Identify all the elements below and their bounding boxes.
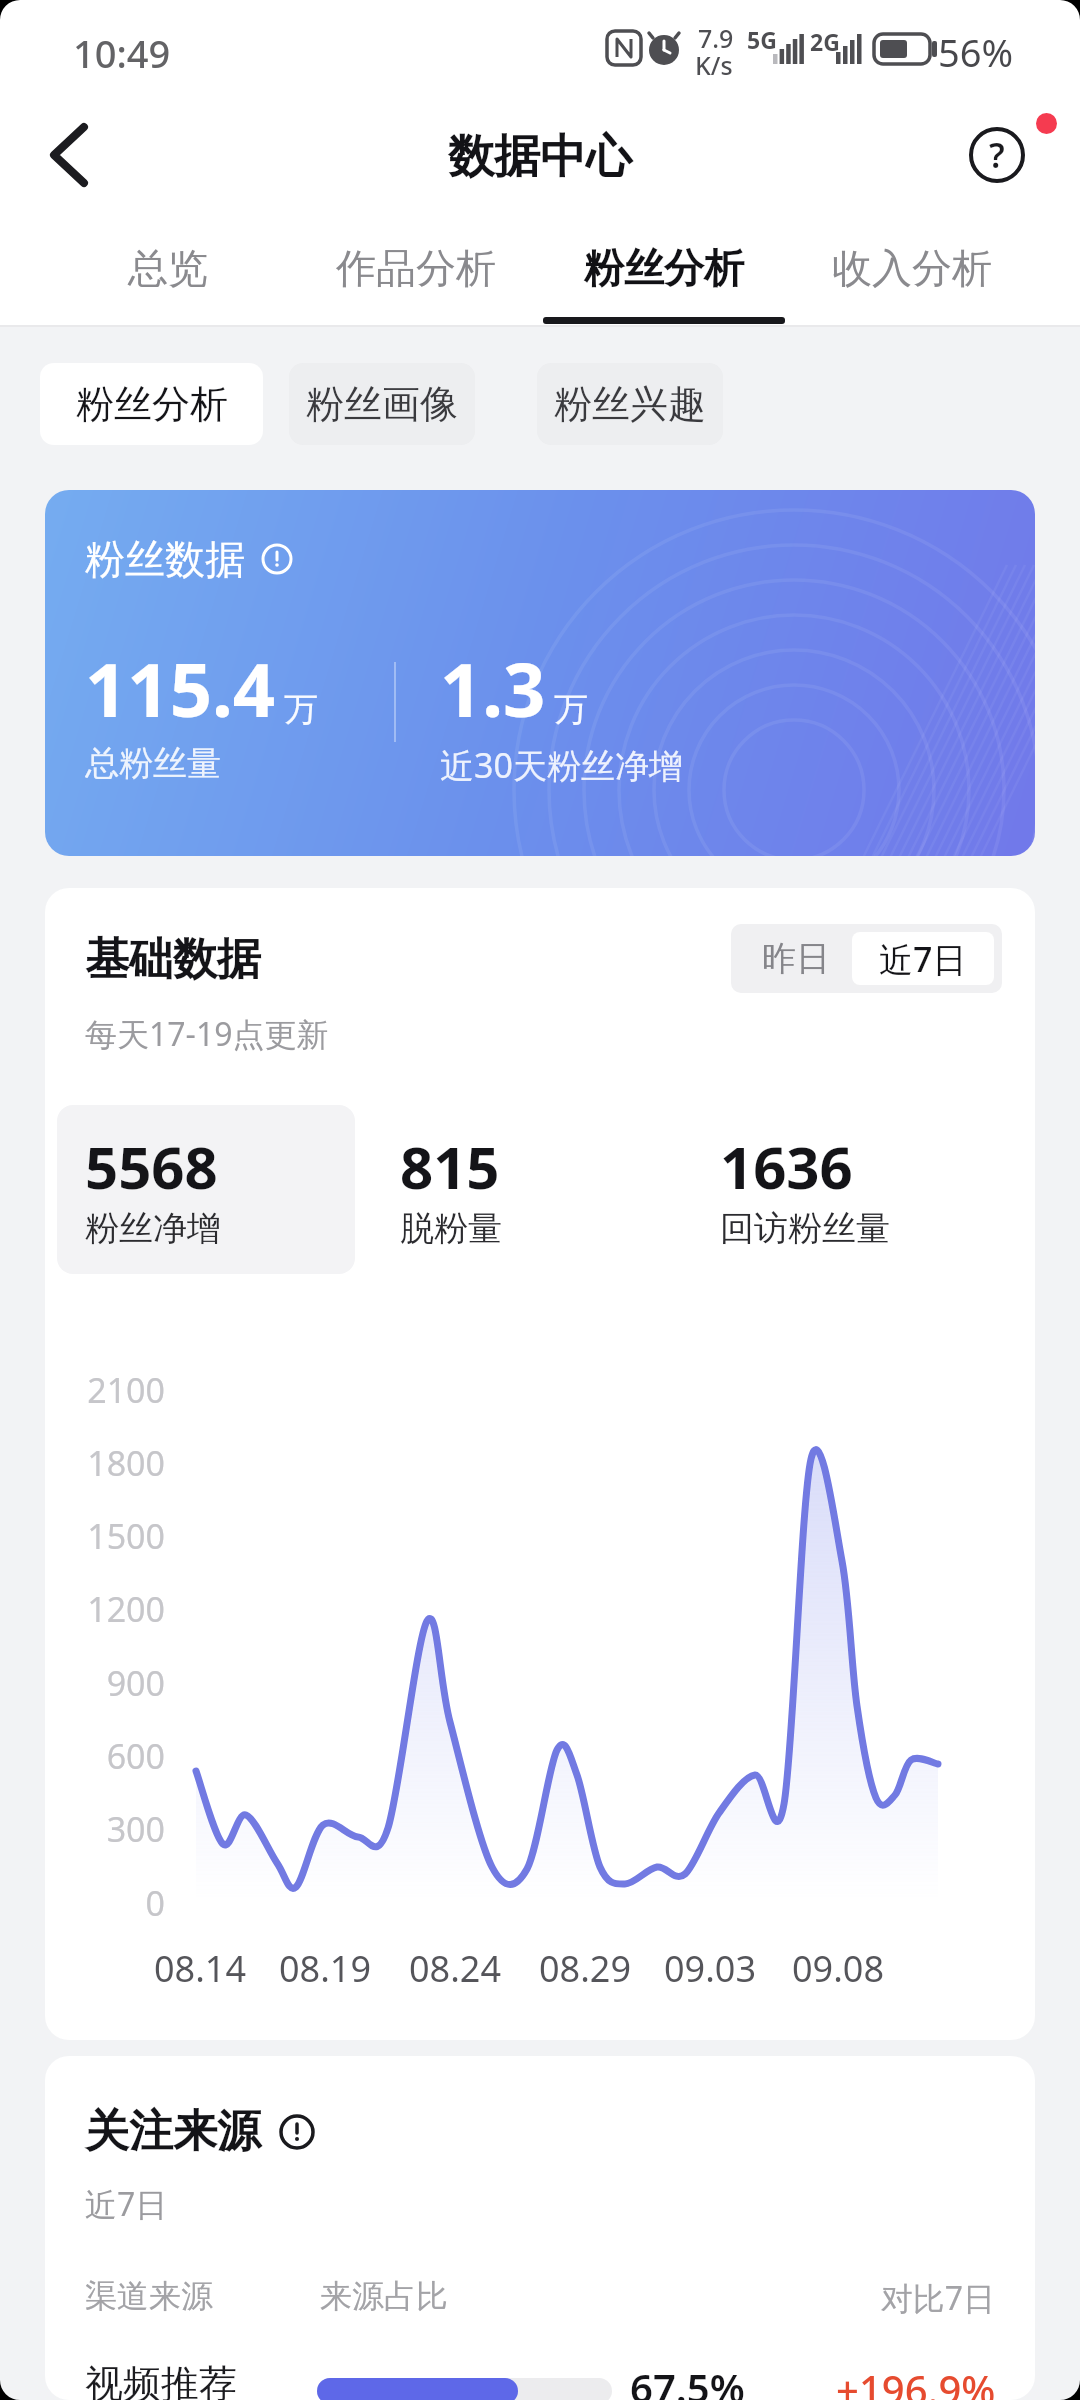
staticText: 回访粉丝量 [720, 1207, 890, 1250]
staticText: 视频推荐 [85, 2360, 237, 2400]
staticText: 粉丝分析 [76, 380, 228, 428]
staticText: 1800 [75, 1440, 165, 1486]
button[interactable]: 视频推荐 [45, 2336, 1035, 2400]
staticText: 300 [75, 1806, 165, 1852]
staticText: 67.5% [630, 2360, 745, 2400]
staticText: K/s [695, 48, 733, 82]
button[interactable]: 1636 [695, 1105, 1015, 1274]
staticText: 7.9 [698, 21, 734, 55]
staticText: 对比7日 [735, 2276, 995, 2320]
button[interactable]: 粉丝分析 [40, 363, 263, 445]
button[interactable]: 粉丝分析 [540, 212, 788, 324]
staticText: 08.14 [140, 1944, 260, 1993]
staticText: 粉丝画像 [306, 380, 458, 428]
staticText: 数据中心 [448, 128, 632, 186]
staticText: ? [989, 132, 1005, 178]
button[interactable]: 作品分析 [292, 212, 540, 324]
button[interactable]: 粉丝数据 [45, 490, 1035, 856]
button[interactable]: 收入分析 [788, 212, 1036, 324]
staticText: 09.08 [778, 1944, 898, 1993]
staticText: 渠道来源 [85, 2276, 213, 2316]
staticText: 08.24 [395, 1944, 515, 1993]
staticText: 815 [400, 1127, 500, 1206]
button[interactable]: 昨日 [731, 924, 860, 993]
button[interactable]: 5568 [57, 1105, 355, 1274]
staticText: 08.29 [525, 1944, 645, 1993]
button[interactable]: 总览 [44, 212, 292, 324]
staticText: 总粉丝量 [85, 742, 221, 785]
staticText: 115.4 [85, 638, 276, 739]
staticText: 近7日 [879, 936, 967, 982]
staticText: 每天17-19点更新 [85, 1012, 329, 1056]
staticText: 2G [810, 26, 840, 57]
staticText: 10:49 [73, 27, 171, 79]
button[interactable]: 815 [375, 1105, 655, 1274]
staticText: 收入分析 [832, 243, 992, 293]
staticText: 万 [284, 688, 318, 731]
staticText: 1500 [75, 1513, 165, 1559]
staticText: 09.03 [650, 1944, 770, 1993]
staticText: 来源占比 [320, 2276, 448, 2316]
staticText: 600 [75, 1733, 165, 1779]
staticText: 近30天粉丝净增 [440, 742, 683, 788]
staticText: 关注来源 [85, 2104, 261, 2159]
staticText: 1.3 [440, 638, 546, 739]
staticText: 08.19 [265, 1944, 385, 1993]
staticText: 1200 [75, 1586, 165, 1632]
button[interactable]: 近7日 [852, 932, 994, 985]
staticText: 2100 [75, 1367, 165, 1413]
staticText: 粉丝分析 [584, 243, 744, 293]
staticText: 0 [75, 1880, 165, 1926]
staticText: 基础数据 [85, 932, 261, 987]
staticText: 5G [747, 24, 777, 55]
staticText: 粉丝数据 [85, 534, 245, 584]
staticText: 1636 [720, 1127, 853, 1206]
staticText: 56% [938, 26, 1014, 78]
staticText: 作品分析 [336, 243, 496, 293]
staticText: 粉丝兴趣 [554, 380, 706, 428]
staticText: 脱粉量 [400, 1207, 502, 1250]
staticText: 900 [75, 1660, 165, 1706]
button[interactable]: ? [967, 125, 1027, 185]
staticText: 万 [554, 688, 588, 731]
button[interactable]: 粉丝画像 [289, 363, 475, 445]
staticText: 5568 [85, 1127, 218, 1206]
staticText: 粉丝净增 [85, 1207, 221, 1250]
staticText: 总览 [128, 243, 208, 293]
button[interactable]: 粉丝兴趣 [537, 363, 723, 445]
staticText: 近7日 [85, 2182, 168, 2226]
staticText: +196.9% [836, 2362, 996, 2400]
staticText: 昨日 [762, 937, 830, 980]
button[interactable] [24, 110, 100, 200]
